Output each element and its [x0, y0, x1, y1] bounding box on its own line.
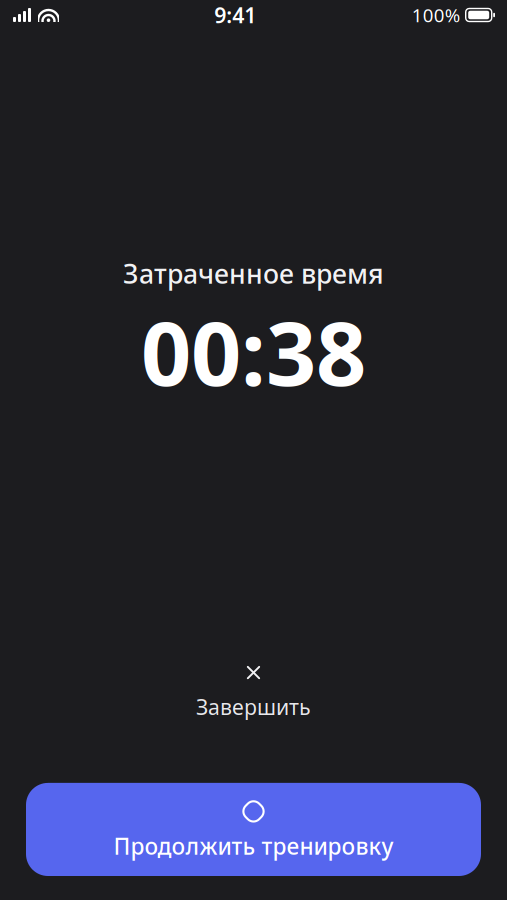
staticText: 9:41: [214, 1, 256, 29]
staticText: Затраченное время: [123, 256, 384, 291]
staticText: 00:38: [141, 293, 366, 410]
button[interactable]: Завершить: [170, 656, 337, 727]
button[interactable]: Продолжить тренировку: [26, 783, 481, 876]
staticText: Продолжить тренировку: [113, 831, 393, 861]
staticText: Завершить: [196, 693, 311, 721]
staticText: 100%: [412, 3, 461, 27]
